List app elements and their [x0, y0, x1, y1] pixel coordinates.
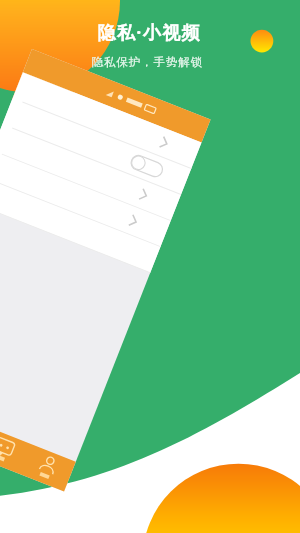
button[interactable]: 隐私·小视频 隐私保护，手势解锁 — [0, 0, 300, 533]
